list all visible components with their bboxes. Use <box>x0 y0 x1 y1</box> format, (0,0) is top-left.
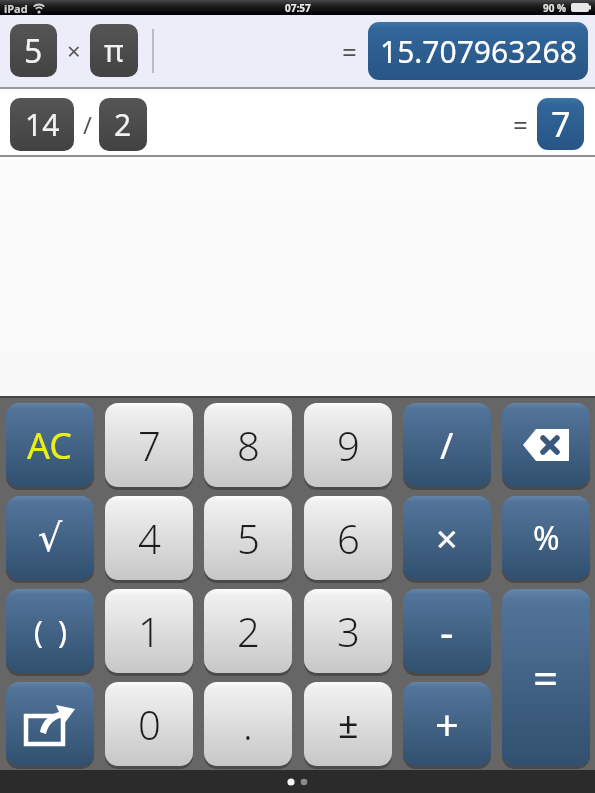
button[interactable]: 6 <box>304 496 392 580</box>
button[interactable]: 5 <box>204 496 292 580</box>
staticText: AC <box>27 421 73 470</box>
staticText: / <box>440 421 454 470</box>
button[interactable]: 4 <box>105 496 193 580</box>
staticText: 14 <box>25 104 60 145</box>
button[interactable]: 2 <box>99 98 147 151</box>
staticText: π <box>104 30 124 71</box>
staticText: √ <box>38 516 63 560</box>
button[interactable]: 7 <box>537 98 584 150</box>
button[interactable]: ± <box>304 682 392 766</box>
staticText: 15.707963268 <box>380 31 577 72</box>
button[interactable]: 8 <box>204 403 292 487</box>
staticText: 6 <box>337 511 360 565</box>
button[interactable]: √ <box>6 496 94 580</box>
button[interactable]: 0 <box>105 682 193 766</box>
staticText: 9 <box>337 418 360 472</box>
button[interactable]: / <box>403 403 491 487</box>
staticText: % <box>533 516 560 560</box>
button[interactable]: 2 <box>204 589 292 673</box>
staticText: 5 <box>24 29 43 73</box>
staticText: 07:57 <box>285 1 311 15</box>
staticText: + <box>435 696 460 753</box>
staticText: . <box>243 697 253 751</box>
button[interactable]: . <box>204 682 292 766</box>
button[interactable] <box>0 89 595 155</box>
staticText: 7 <box>138 418 161 472</box>
staticText: iPad <box>4 1 28 16</box>
button[interactable]: + <box>403 682 491 766</box>
button[interactable]: ( ) <box>6 589 94 673</box>
staticText: 8 <box>237 418 260 472</box>
button[interactable]: 1 <box>105 589 193 673</box>
staticText: = <box>513 107 528 142</box>
staticText: 0 <box>138 697 161 751</box>
staticText: - <box>440 603 454 660</box>
staticText: 7 <box>551 101 571 147</box>
button[interactable] <box>6 682 94 766</box>
button[interactable]: 5 <box>10 24 57 77</box>
button[interactable]: × <box>403 496 491 580</box>
button[interactable]: 9 <box>304 403 392 487</box>
staticText: ( ) <box>34 611 67 652</box>
staticText: = <box>533 648 559 708</box>
button[interactable]: 7 <box>105 403 193 487</box>
staticText: 4 <box>138 511 161 565</box>
button[interactable]: 3 <box>304 589 392 673</box>
button[interactable]: 14 <box>10 98 74 151</box>
staticText: 90 % <box>543 1 567 15</box>
button[interactable] <box>502 403 590 487</box>
staticText: 1 <box>138 604 161 658</box>
button[interactable]: 15.707963268 <box>368 22 588 80</box>
staticText: 2 <box>114 104 132 145</box>
staticText: 3 <box>337 604 360 658</box>
button[interactable]: % <box>502 496 590 580</box>
button[interactable]: - <box>403 589 491 673</box>
staticText: ± <box>338 700 359 749</box>
button[interactable] <box>0 15 595 87</box>
staticText: 2 <box>237 604 260 658</box>
staticText: / <box>83 108 92 141</box>
button[interactable]: π <box>90 24 138 77</box>
staticText: = <box>342 34 357 69</box>
staticText: × <box>67 34 81 67</box>
staticText: 5 <box>237 511 260 565</box>
staticText: × <box>436 512 458 564</box>
button[interactable]: AC <box>6 403 94 487</box>
button[interactable]: = <box>502 589 590 766</box>
